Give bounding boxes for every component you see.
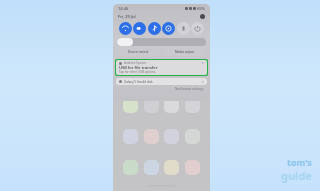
button[interactable]: Power saving [191, 22, 204, 35]
staticText: v [202, 80, 204, 84]
button[interactable]: Auto rotate [162, 22, 175, 35]
button[interactable]: Bluetooth [148, 22, 161, 35]
staticText: Device control [128, 50, 149, 54]
button[interactable]: Flashlight [177, 22, 190, 35]
staticText: Fri, 29 Jul [118, 14, 136, 19]
staticText: Notification settings [175, 87, 204, 91]
staticText: 14:46 [118, 6, 129, 11]
staticText: guide [281, 168, 312, 183]
staticText: tom's [287, 156, 312, 168]
button[interactable]: Sound [133, 22, 146, 35]
button[interactable]: Media output [163, 48, 206, 56]
staticText: Galaxy S Invalid disk [124, 80, 153, 84]
staticText: USB for file transfer [119, 65, 158, 70]
button[interactable]: Android System [116, 60, 207, 75]
staticText: Tap for other USB options. [119, 70, 157, 74]
button[interactable]: Device control [117, 48, 160, 56]
button[interactable]: Wi-Fi [119, 22, 132, 35]
button[interactable]: Settings [200, 14, 205, 19]
staticText: Android System [124, 61, 147, 65]
staticText: 65% [197, 6, 205, 11]
button[interactable]: Galaxy S Invalid disk [116, 78, 207, 85]
button[interactable]: Brightness [117, 38, 206, 46]
staticText: v [202, 61, 204, 65]
staticText: Media output [175, 50, 195, 54]
